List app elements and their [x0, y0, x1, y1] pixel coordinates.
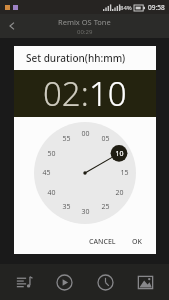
staticText: 45 [42, 168, 51, 178]
staticText: 00:29 [77, 28, 93, 36]
staticText: 10 [115, 149, 124, 159]
button[interactable]: Timer [88, 265, 122, 299]
staticText: Remix OS Tone [58, 17, 111, 27]
button[interactable]: Back [0, 14, 24, 38]
staticText: 25 [101, 202, 110, 212]
staticText: 15 [120, 168, 129, 178]
staticText: 10 [89, 71, 127, 116]
staticText: 55 [62, 134, 71, 144]
button[interactable]: Playlist [7, 265, 41, 299]
staticText: CANCEL [89, 237, 116, 247]
staticText: 35 [62, 202, 71, 212]
staticText: 40 [47, 188, 56, 198]
staticText: 09:58 [148, 3, 165, 12]
button[interactable]: OK [128, 234, 146, 250]
staticText: 50 [47, 149, 56, 159]
staticText: 00 [81, 129, 90, 139]
button[interactable]: Gallery [128, 265, 162, 299]
staticText: 30 [81, 207, 90, 217]
staticText: 02: [43, 71, 89, 116]
staticText: 84% [120, 4, 132, 12]
staticText: 05 [101, 134, 110, 144]
staticText: OK [132, 237, 142, 247]
staticText: 20 [115, 188, 124, 198]
button[interactable]: CANCEL [85, 234, 120, 250]
staticText: Set duration(hh:mm) [26, 51, 126, 65]
button[interactable]: Play [47, 265, 81, 299]
